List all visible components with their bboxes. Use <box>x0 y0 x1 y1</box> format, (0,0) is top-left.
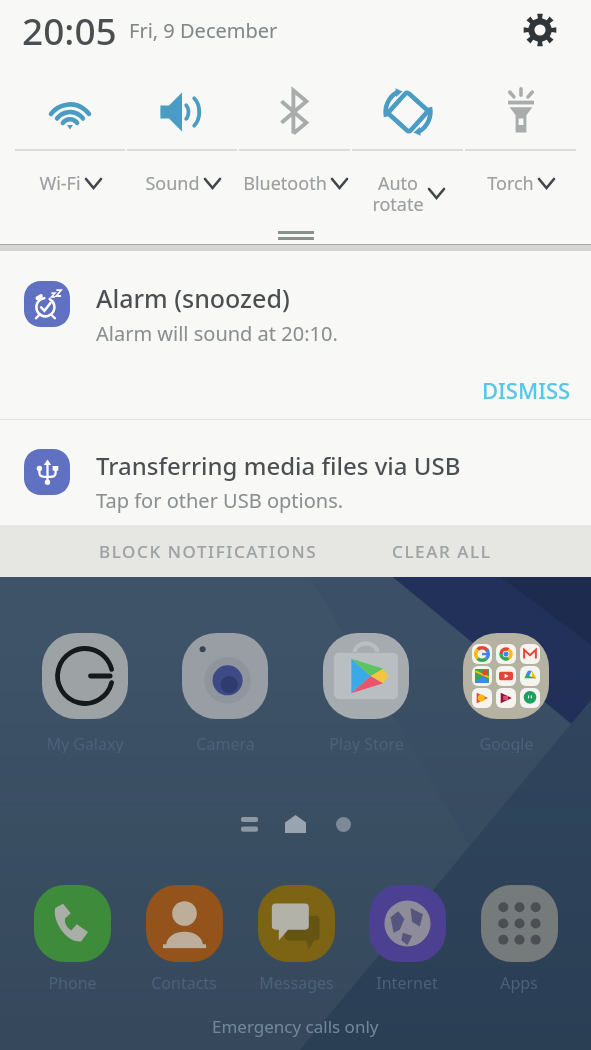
staticText: Google <box>479 733 534 753</box>
staticText: CLEAR ALL <box>392 540 492 563</box>
button[interactable]: Camera <box>170 633 280 753</box>
button[interactable]: BLOCK NOTIFICATIONS <box>87 526 330 577</box>
button[interactable]: Home <box>279 808 311 840</box>
button[interactable]: CLEAR ALL <box>380 526 504 577</box>
button[interactable]: Alarm (snoozed) <box>0 251 591 419</box>
staticText: Apps <box>500 972 538 994</box>
staticText: Contacts <box>151 972 217 994</box>
staticText: DISMISS <box>482 375 571 405</box>
staticText: Messages <box>259 972 334 994</box>
button[interactable]: Torch <box>464 60 577 196</box>
button[interactable]: Bluetooth <box>238 60 351 196</box>
button[interactable]: Wi-Fi <box>14 60 126 196</box>
staticText: Bluetooth <box>243 171 327 196</box>
staticText: 20:05 <box>22 5 117 55</box>
button[interactable]: My Galaxy <box>30 633 140 753</box>
button[interactable]: Google <box>451 633 561 753</box>
button[interactable]: Phone <box>22 885 122 994</box>
staticText: Camera <box>196 733 255 753</box>
staticText: Transferring media files via USB <box>96 449 461 482</box>
staticText: Wi-Fi <box>39 171 81 196</box>
staticText: Internet <box>376 972 438 994</box>
button[interactable]: Apps <box>469 885 569 994</box>
button[interactable]: Play Store <box>311 633 421 753</box>
button[interactable]: Auto rotate <box>351 60 464 216</box>
button[interactable]: Contacts <box>134 885 234 994</box>
staticText: Play Store <box>329 733 404 753</box>
button[interactable]: Apps list <box>233 808 265 840</box>
button[interactable]: DISMISS <box>472 367 581 413</box>
staticText: Emergency calls only <box>212 1015 379 1038</box>
button[interactable]: Transferring media files via USB <box>0 420 591 525</box>
staticText: Fri, 9 December <box>129 17 278 44</box>
staticText: Auto rotate <box>372 171 424 216</box>
staticText: My Galaxy <box>46 733 124 753</box>
staticText: BLOCK NOTIFICATIONS <box>99 540 318 563</box>
staticText: Sound <box>145 171 200 196</box>
button[interactable]: Sound <box>126 60 238 196</box>
staticText: Alarm will sound at 20:10. <box>96 320 338 347</box>
button[interactable]: Messages <box>246 885 346 994</box>
staticText: Phone <box>48 972 97 994</box>
staticText: Alarm (snoozed) <box>96 281 290 315</box>
button[interactable]: Settings <box>516 6 564 54</box>
staticText: Tap for other USB options. <box>96 487 344 514</box>
staticText: Torch <box>487 171 534 196</box>
button[interactable]: Page 2 <box>327 808 359 840</box>
button[interactable]: Internet <box>357 885 457 994</box>
